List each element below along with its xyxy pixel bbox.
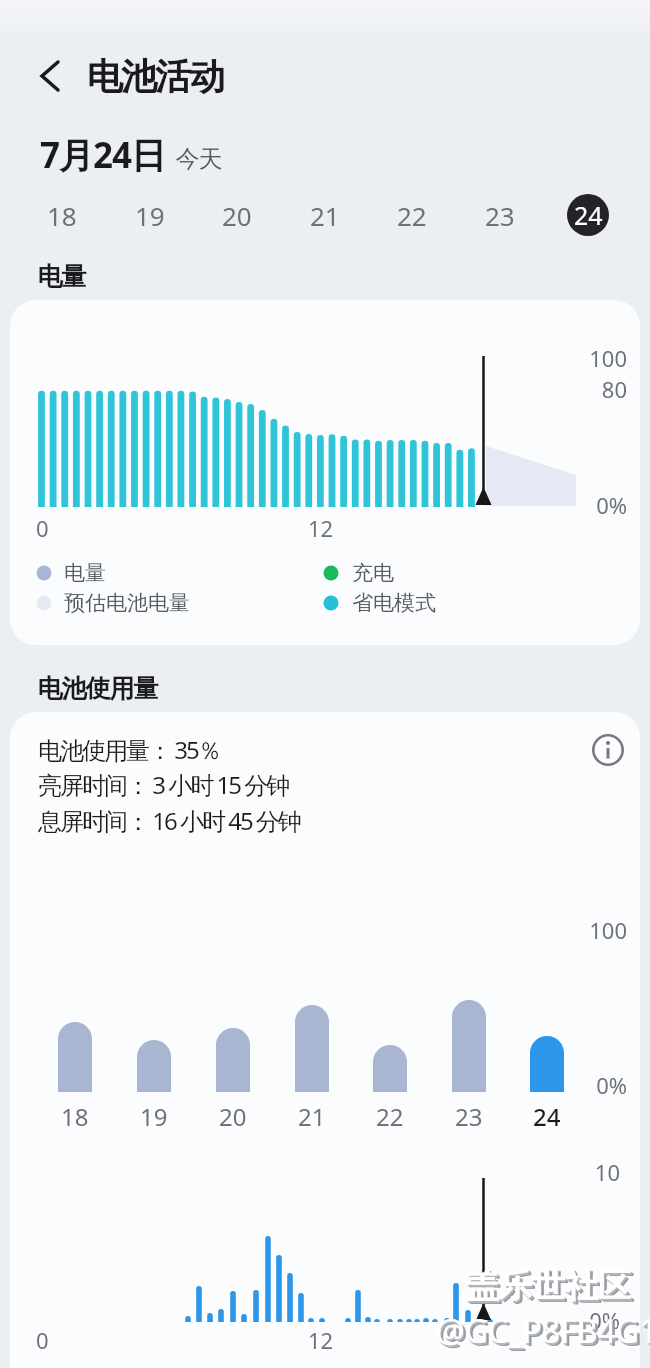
- button[interactable]: 23: [474, 193, 526, 237]
- staticText: 18: [47, 198, 77, 233]
- staticText: 21: [298, 1100, 326, 1130]
- staticText: @GC_P8FB4G1: [436, 1309, 650, 1353]
- staticText: @GC_P8FB4G1: [439, 1312, 650, 1356]
- staticText: 7月24日: [40, 131, 166, 179]
- staticText: 今天: [176, 144, 222, 174]
- staticText: 电池使用量: [38, 673, 158, 704]
- button[interactable]: 24: [567, 194, 609, 236]
- button[interactable]: 21: [299, 193, 351, 237]
- staticText: 20: [219, 1100, 247, 1130]
- staticText: 电量: [64, 560, 106, 586]
- staticText: 23: [485, 198, 515, 233]
- staticText: 24: [533, 1100, 561, 1130]
- staticText: 12: [308, 1325, 334, 1355]
- staticText: 10: [594, 1157, 620, 1187]
- staticText: 22: [376, 1100, 404, 1130]
- staticText: 电量: [38, 261, 86, 292]
- staticText: @GC_P8FB4G1: [437, 1311, 650, 1355]
- staticText: 充电: [352, 560, 394, 586]
- staticText: 80: [601, 374, 627, 404]
- staticText: 盖乐世社区: [466, 1265, 631, 1307]
- staticText: 100: [589, 915, 627, 945]
- button[interactable]: 19: [124, 193, 176, 237]
- staticText: 20: [222, 198, 252, 233]
- staticText: 0: [36, 513, 49, 543]
- button[interactable]: 18: [36, 193, 88, 237]
- staticText: 12: [308, 513, 334, 543]
- staticText: 24: [574, 198, 603, 232]
- staticText: 电池使用量： 35％: [38, 733, 220, 766]
- staticText: 100: [589, 343, 627, 373]
- staticText: 19: [140, 1100, 168, 1130]
- staticText: 息屏时间： 16 小时 45 分钟: [38, 804, 300, 837]
- staticText: 19: [135, 198, 165, 233]
- staticText: 0%: [589, 1305, 620, 1335]
- button[interactable]: [30, 56, 74, 100]
- staticText: 亮屏时间： 3 小时 15 分钟: [38, 768, 289, 801]
- staticText: 预估电池电量: [64, 590, 190, 616]
- staticText: 0%: [596, 1070, 627, 1100]
- staticText: 电池活动: [88, 54, 224, 99]
- staticText: 盖乐世社区: [467, 1267, 632, 1309]
- button[interactable]: [588, 730, 628, 770]
- button[interactable]: 20: [211, 193, 263, 237]
- staticText: 0: [36, 1325, 49, 1355]
- staticText: 18: [61, 1100, 89, 1130]
- staticText: 0%: [596, 490, 627, 520]
- staticText: 23: [455, 1100, 483, 1130]
- staticText: 22: [397, 198, 427, 233]
- button[interactable]: 22: [386, 193, 438, 237]
- staticText: 21: [310, 198, 340, 233]
- staticText: 盖乐世社区: [469, 1268, 634, 1310]
- staticText: 省电模式: [352, 590, 436, 616]
